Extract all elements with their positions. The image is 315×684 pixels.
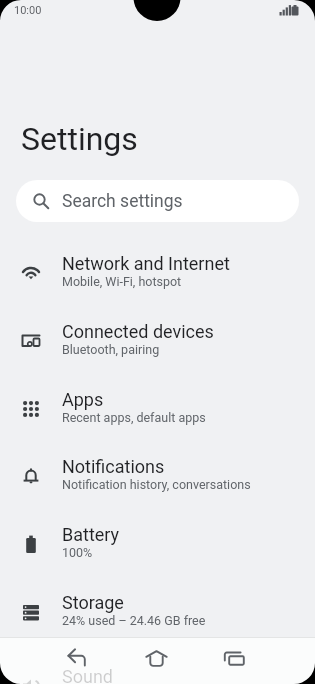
staticText: Mobile, Wi-Fi, hotspot [62,274,182,289]
staticText: Search settings [62,191,183,212]
staticText: 10:00 [14,4,42,17]
staticText: Notifications [62,456,165,477]
staticText: Storage [62,592,124,613]
staticText: Settings [21,120,138,158]
staticText: Apps [62,389,104,410]
staticText: Network and Internet [62,253,230,274]
staticText: Sound [62,666,113,684]
staticText: 24% used – 24.46 GB free [62,613,206,628]
staticText: Battery [62,524,120,545]
staticText: Connected devices [62,321,214,342]
staticText: 100% [62,545,93,560]
staticText: Notification history, conversations [62,477,251,492]
staticText: Bluetooth, pairing [62,342,160,357]
staticText: Recent apps, default apps [62,410,206,425]
